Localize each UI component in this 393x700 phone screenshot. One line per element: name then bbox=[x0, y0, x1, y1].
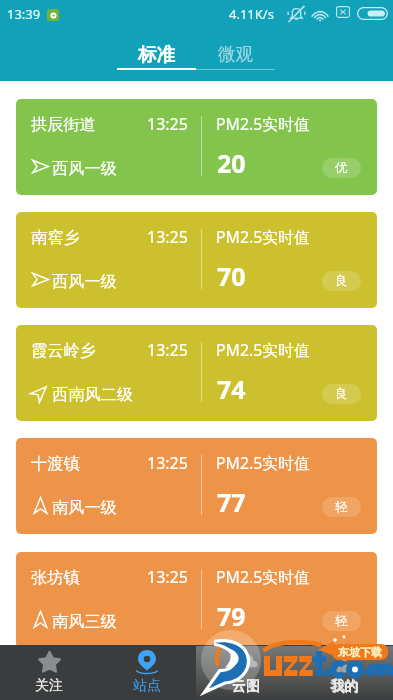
staticText: 东坡下载 bbox=[338, 645, 382, 659]
staticText: 79 bbox=[217, 599, 246, 633]
button[interactable]: 霞云岭乡 bbox=[16, 325, 377, 421]
staticText: 优 bbox=[335, 160, 348, 176]
staticText: 云图 bbox=[232, 678, 260, 696]
staticText: PM2.5实时值 bbox=[216, 339, 310, 361]
staticText: 云图 bbox=[232, 677, 260, 695]
staticText: 良 bbox=[335, 273, 348, 289]
button[interactable]: 张坊镇 bbox=[16, 552, 377, 648]
staticText: 西风一级 bbox=[52, 158, 117, 178]
staticText: 南风一级 bbox=[52, 497, 117, 517]
other: No SIM bbox=[336, 5, 350, 19]
staticText: PM2.5实时值 bbox=[216, 452, 310, 474]
staticText: 张坊镇 bbox=[31, 567, 80, 587]
staticText: 良 bbox=[335, 386, 348, 402]
staticText: 关注 bbox=[35, 677, 63, 695]
staticText: 我的 bbox=[331, 678, 359, 696]
staticText: 拱辰街道 bbox=[31, 114, 96, 134]
staticText: 南风三级 bbox=[52, 611, 117, 631]
other: Silent mode bbox=[287, 4, 306, 23]
staticText: 西南风二级 bbox=[52, 384, 133, 404]
button[interactable]: 我的 bbox=[295, 645, 393, 700]
button[interactable]: 拱辰街道 bbox=[16, 99, 377, 195]
other: Battery bbox=[357, 7, 388, 20]
staticText: 70 bbox=[217, 259, 246, 293]
staticText: PM2.5实时值 bbox=[216, 113, 310, 135]
staticText: 13:25 bbox=[147, 566, 188, 588]
staticText: 站点 bbox=[133, 677, 161, 695]
staticText: 轻 bbox=[335, 499, 348, 515]
staticText: 南窖乡 bbox=[31, 227, 80, 247]
staticText: 4.11K/s bbox=[229, 5, 274, 23]
staticText: 20 bbox=[217, 146, 246, 180]
button[interactable]: 站点 bbox=[98, 645, 196, 700]
staticText: 13:25 bbox=[147, 452, 188, 474]
button[interactable]: 云图 bbox=[197, 645, 295, 700]
staticText: 13:25 bbox=[147, 339, 188, 361]
button[interactable]: 关注 bbox=[0, 645, 98, 700]
staticText: 标准 bbox=[138, 43, 175, 66]
button[interactable]: 标准 bbox=[117, 36, 196, 81]
staticText: 77 bbox=[217, 485, 246, 519]
staticText: 13:39 bbox=[7, 5, 41, 23]
staticText: 西风一级 bbox=[52, 271, 117, 291]
staticText: 轻 bbox=[335, 613, 348, 629]
staticText: 74 bbox=[217, 372, 246, 406]
staticText: PM2.5实时值 bbox=[216, 226, 310, 248]
button[interactable]: 南窖乡 bbox=[16, 212, 377, 308]
staticText: PM2.5实时值 bbox=[216, 566, 310, 588]
button[interactable]: 微观 bbox=[196, 36, 275, 81]
staticText: 我的 bbox=[330, 677, 358, 695]
staticText: 霞云岭乡 bbox=[31, 340, 96, 360]
staticText: 微观 bbox=[218, 43, 253, 65]
button[interactable]: 十渡镇 bbox=[16, 438, 377, 534]
staticText: 十渡镇 bbox=[31, 453, 80, 473]
staticText: 13:25 bbox=[147, 113, 188, 135]
other: Wi-Fi bbox=[311, 5, 329, 23]
staticText: 13:25 bbox=[147, 226, 188, 248]
